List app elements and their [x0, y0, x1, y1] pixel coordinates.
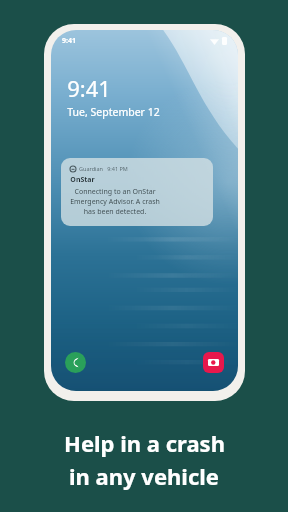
staticText: 9:41 — [67, 73, 111, 103]
staticText: 9:41 — [62, 36, 76, 46]
staticText: Connecting to an OnStar Emergency Adviso… — [70, 187, 160, 217]
staticText: in any vehicle — [69, 461, 219, 491]
button[interactable]: Phone — [65, 352, 86, 373]
staticText: OnStar — [70, 175, 95, 185]
staticText: 9:41 PM — [107, 165, 128, 172]
staticText: Guardian — [79, 165, 103, 172]
staticText: Tue, September 12 — [67, 105, 160, 119]
button[interactable]: Guardian — [61, 158, 213, 226]
staticText: Help in a crash — [64, 428, 225, 458]
button[interactable]: Camera — [203, 352, 224, 373]
